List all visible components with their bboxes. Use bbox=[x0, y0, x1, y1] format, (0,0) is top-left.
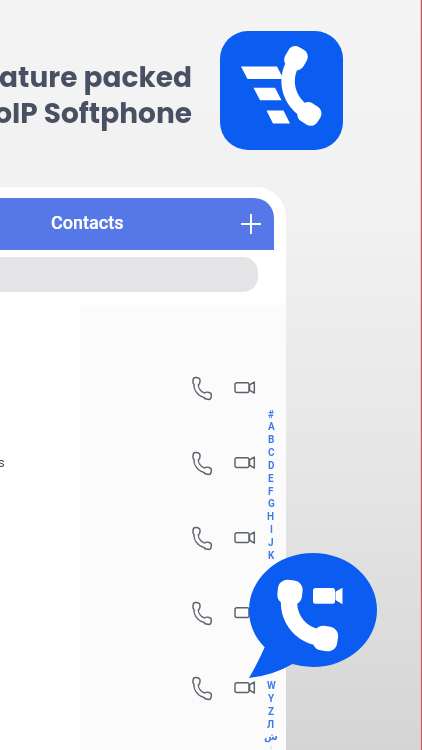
button[interactable]: Start a new video call bbox=[243, 548, 385, 684]
button[interactable]: Call bbox=[185, 447, 219, 479]
staticText: I bbox=[270, 524, 273, 536]
staticText: Contacts bbox=[51, 212, 124, 233]
staticText: A bbox=[268, 421, 275, 433]
staticText: D bbox=[268, 460, 275, 472]
staticText: G bbox=[268, 498, 275, 510]
button[interactable]: Call bbox=[185, 372, 219, 404]
button[interactable]: Video call bbox=[226, 672, 260, 704]
staticText: H bbox=[267, 511, 275, 523]
button[interactable]: Add contact bbox=[235, 208, 267, 240]
staticText: Z bbox=[268, 706, 275, 718]
staticText: C bbox=[268, 447, 275, 459]
staticText: E bbox=[268, 473, 274, 485]
button[interactable]: Call bbox=[185, 597, 219, 629]
button[interactable]: Call bbox=[185, 672, 219, 704]
button[interactable]: Video call bbox=[226, 372, 260, 404]
staticText: K bbox=[268, 550, 275, 562]
staticText: # bbox=[268, 409, 274, 421]
staticText: F bbox=[268, 486, 274, 498]
button[interactable]: Video call bbox=[226, 522, 260, 554]
staticText: Y bbox=[268, 693, 275, 705]
button[interactable]: Video call bbox=[226, 597, 260, 629]
button[interactable]: Contacts bbox=[0, 198, 274, 250]
staticText: W bbox=[267, 680, 276, 692]
staticText: J bbox=[268, 537, 274, 549]
staticText: B bbox=[268, 434, 275, 446]
button[interactable]: Video call bbox=[226, 447, 260, 479]
staticText: ﭠ bbox=[269, 744, 273, 750]
staticText: ش bbox=[264, 731, 278, 743]
button[interactable]: Call bbox=[185, 522, 219, 554]
staticText: Candles bbox=[0, 455, 5, 470]
staticText: Л bbox=[267, 719, 275, 731]
button[interactable]: VoIP Softphone app icon bbox=[220, 31, 343, 150]
staticText: Feature packed VoIP Softphone bbox=[0, 58, 192, 132]
